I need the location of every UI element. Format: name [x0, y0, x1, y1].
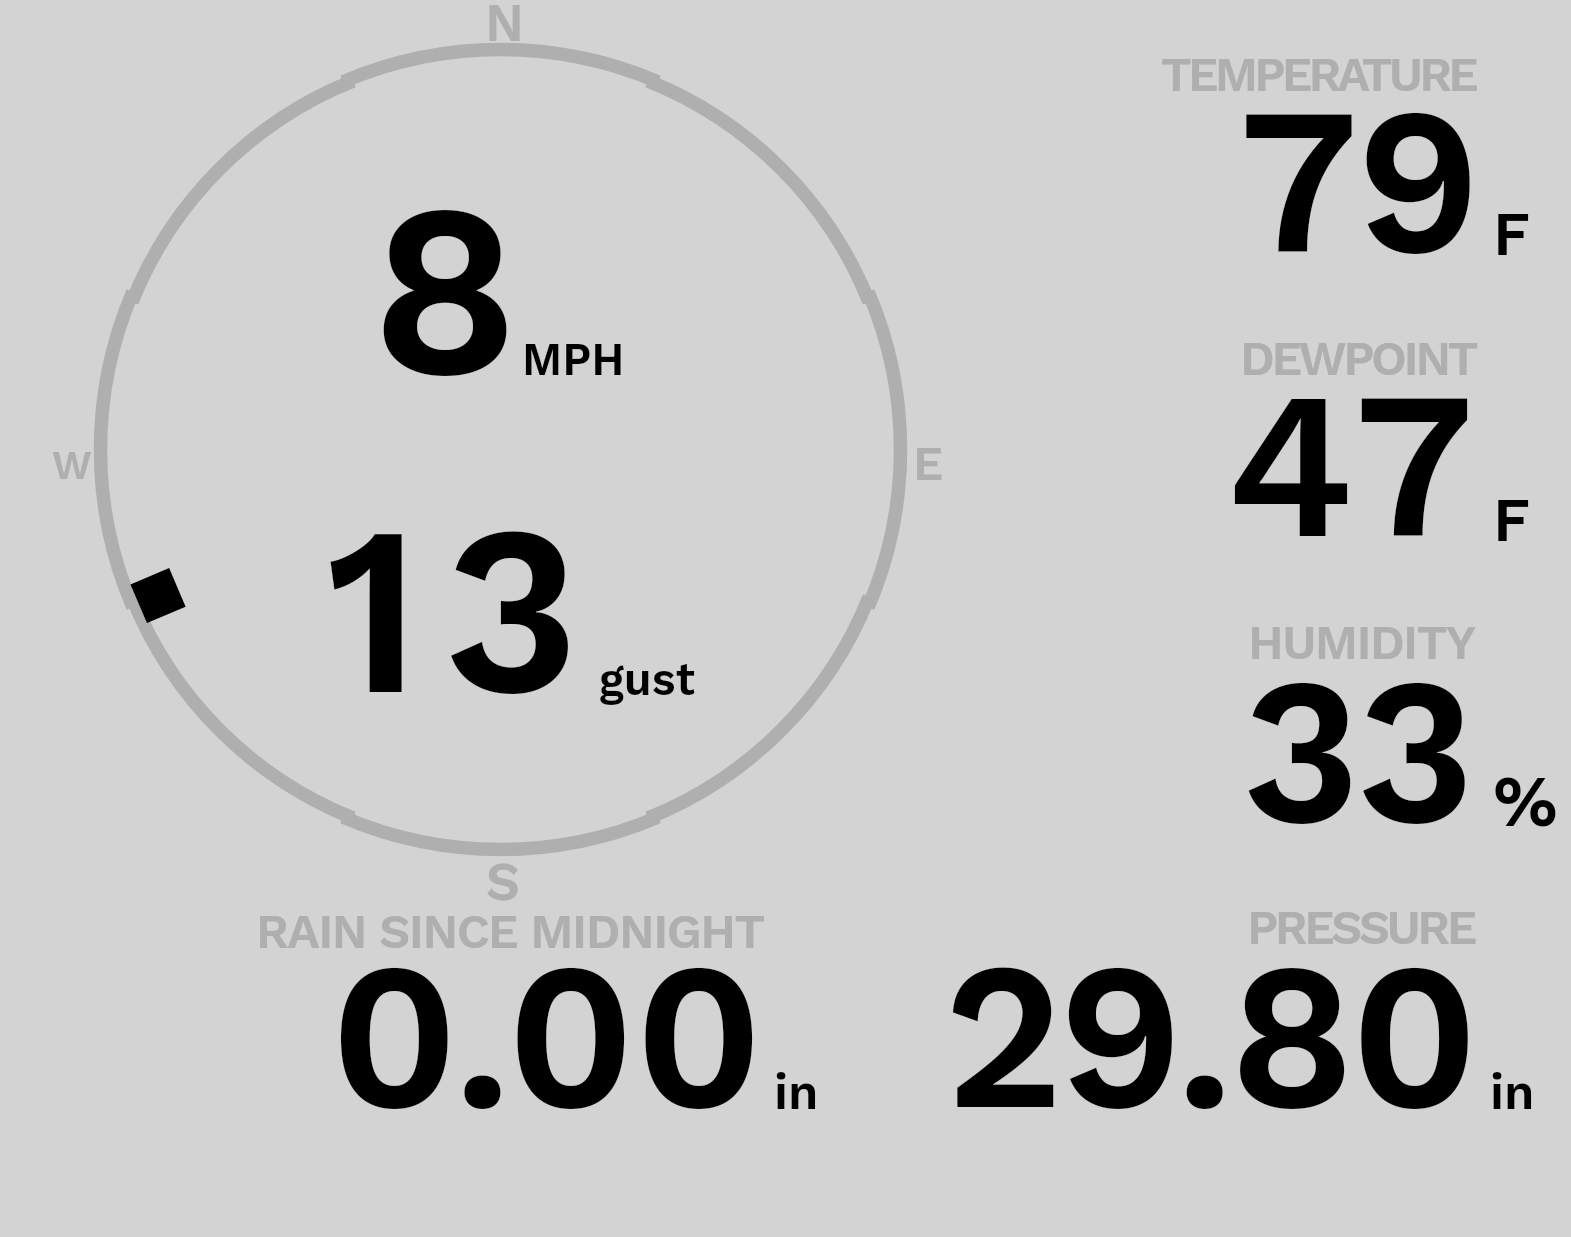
staticText: TEMPERATURE	[1161, 45, 1476, 103]
staticText: MPH	[522, 333, 625, 387]
staticText: in	[774, 1063, 819, 1122]
button[interactable]: Humidity 33 percent	[1150, 615, 1550, 830]
staticText: %	[1493, 760, 1558, 845]
staticText: in	[1490, 1063, 1535, 1122]
button[interactable]: Rain since midnight 0.00 inches	[250, 905, 830, 1120]
staticText: W	[52, 441, 92, 489]
staticText: 33	[1242, 632, 1472, 876]
button[interactable]: Wind direction compass, 8 miles per hour…	[95, 50, 905, 850]
staticText: F	[1493, 484, 1530, 557]
staticText: DEWPOINT	[1240, 329, 1476, 387]
staticText: E	[913, 435, 944, 493]
button[interactable]: Pressure 29.80 inches	[900, 900, 1490, 1115]
staticText: 47	[1226, 346, 1485, 590]
staticText: N	[485, 0, 525, 55]
staticText: S	[486, 850, 520, 914]
staticText: 8	[371, 150, 520, 438]
staticText: HUMIDITY	[1248, 613, 1475, 671]
button[interactable]: Temperature 79 degrees Fahrenheit	[1150, 45, 1550, 260]
staticText: PRESSURE	[1247, 898, 1474, 956]
staticText: gust	[599, 653, 695, 707]
staticText: 79	[1239, 62, 1479, 306]
staticText: 29.80	[944, 917, 1475, 1161]
staticText: 0.00	[330, 917, 763, 1161]
staticText: RAIN SINCE MIDNIGHT	[256, 902, 764, 960]
button[interactable]: Dewpoint 47 degrees Fahrenheit	[1150, 330, 1550, 545]
staticText: F	[1493, 198, 1530, 271]
staticText: 13	[326, 473, 602, 754]
